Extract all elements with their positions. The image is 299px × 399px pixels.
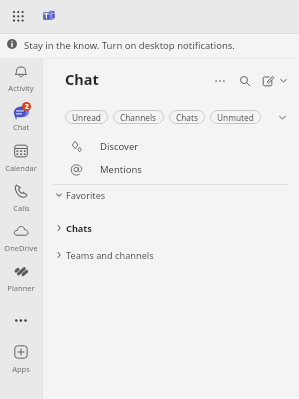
staticText: Activity: [8, 83, 34, 93]
button[interactable]: More options: [213, 74, 226, 87]
button[interactable]: Activity: [0, 62, 42, 94]
staticText: Stay in the know. Turn on desktop notifi…: [24, 39, 235, 52]
button[interactable]: 2: [0, 102, 42, 134]
button[interactable]: Apps: [0, 343, 42, 375]
button[interactable]: Chats: [169, 110, 205, 124]
staticText: Planner: [7, 283, 35, 293]
staticText: Chats: [66, 222, 92, 235]
button[interactable]: Favorites: [53, 186, 288, 204]
staticText: Favorites: [66, 189, 106, 202]
staticText: Calendar: [5, 163, 37, 173]
button[interactable]: Channels: [113, 110, 164, 124]
button[interactable]: OneDrive: [0, 222, 42, 254]
button[interactable]: Unread: [65, 110, 108, 124]
button[interactable]: More apps: [10, 312, 32, 328]
button[interactable]: Search: [238, 74, 251, 87]
button[interactable]: Planner: [0, 262, 42, 294]
button[interactable]: New chat: [261, 74, 274, 87]
button[interactable]: More filters: [276, 111, 288, 123]
button[interactable]: Discover: [53, 136, 288, 156]
button[interactable]: Chats: [53, 219, 288, 237]
staticText: Unmuted: [217, 112, 254, 123]
button[interactable]: Chat: [65, 69, 99, 89]
button[interactable]: Calls: [0, 182, 42, 214]
button[interactable]: Teams and channels: [53, 246, 288, 264]
button[interactable]: Mentions: [53, 159, 288, 179]
staticText: Mentions: [100, 163, 142, 176]
staticText: Channels: [120, 112, 157, 123]
staticText: Discover: [100, 140, 139, 153]
staticText: Teams and channels: [66, 249, 154, 262]
staticText: Chats: [176, 112, 198, 123]
staticText: OneDrive: [4, 243, 38, 253]
button[interactable]: App launcher: [11, 9, 26, 24]
staticText: Apps: [12, 364, 30, 374]
button[interactable]: Unmuted: [210, 110, 261, 124]
button[interactable]: New chat menu: [277, 74, 289, 86]
staticText: Calls: [13, 203, 30, 213]
staticText: Chat: [13, 122, 30, 132]
staticText: Unread: [72, 112, 101, 123]
staticText: 2: [25, 102, 29, 111]
button[interactable]: Microsoft Teams: [43, 10, 55, 22]
button[interactable]: Calendar: [0, 142, 42, 174]
